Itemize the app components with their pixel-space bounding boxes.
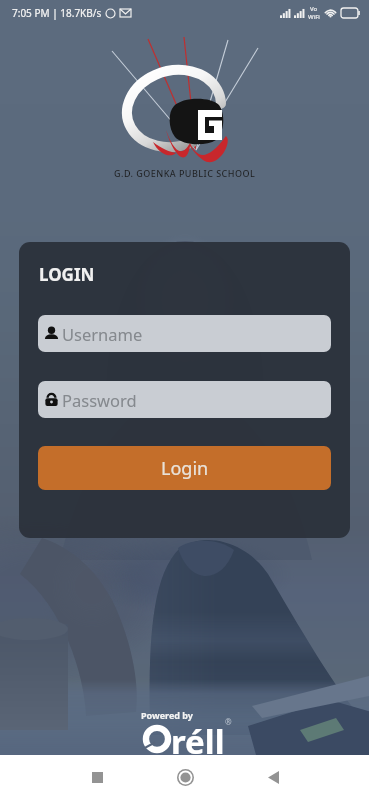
button[interactable]: Password (38, 381, 331, 418)
staticText: Vo (310, 5, 318, 13)
staticText: Username (62, 323, 143, 345)
staticText: LOGIN (39, 263, 95, 286)
staticText: Login (161, 456, 209, 481)
staticText: G.D. GOENKA PUBLIC SCHOOL (114, 167, 256, 179)
button[interactable]: Recent apps (53, 755, 141, 800)
staticText: Password (62, 389, 137, 411)
button[interactable]: Back (229, 755, 317, 800)
staticText: réll (171, 719, 225, 764)
button[interactable]: Username (38, 315, 331, 352)
staticText: WiFi (308, 13, 320, 21)
staticText: ® (225, 716, 232, 727)
staticText: Powered by (141, 709, 194, 721)
staticText: 7:05 PM | 18.7KB/s (12, 6, 102, 20)
button[interactable]: Login (38, 446, 331, 490)
button[interactable]: Home (141, 755, 229, 800)
